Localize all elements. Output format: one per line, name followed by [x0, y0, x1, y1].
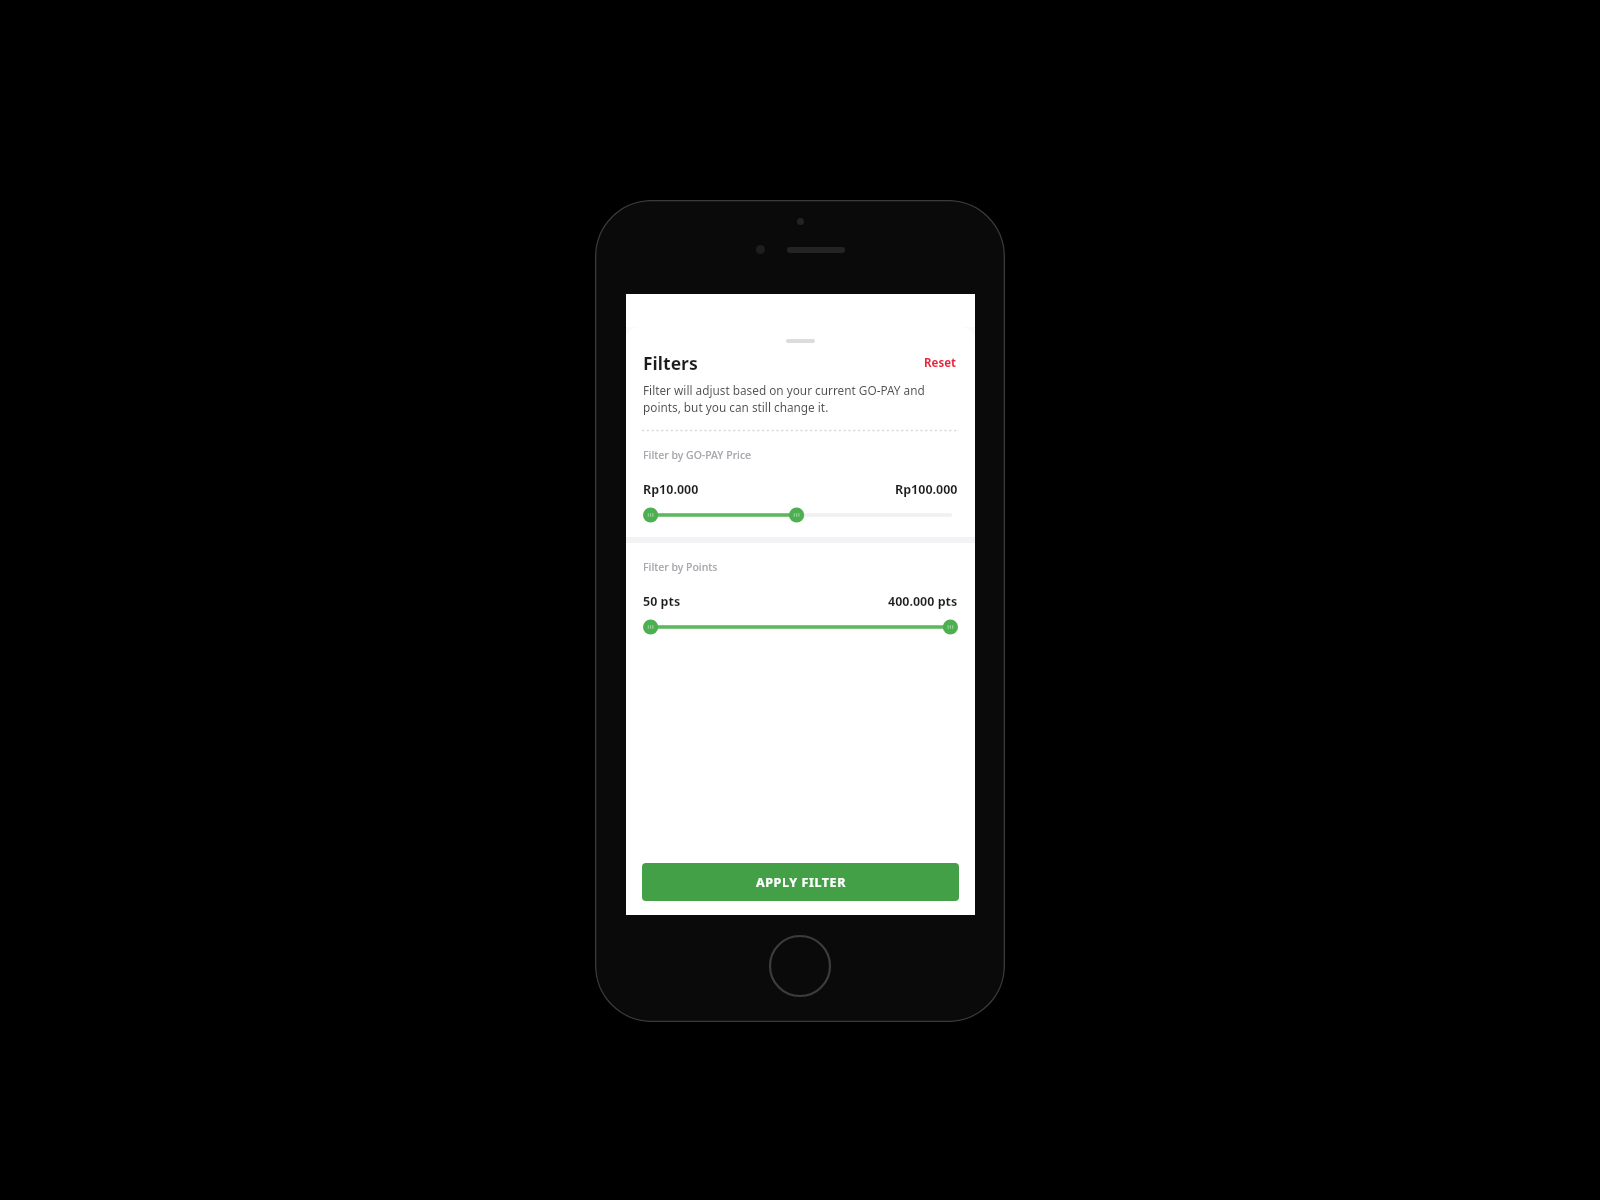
staticText: Filter by GO-PAY Price — [643, 448, 752, 462]
button[interactable]: APPLY FILTER — [642, 863, 959, 901]
staticText: Filter will adjust based on your current… — [643, 382, 955, 415]
staticText: Filter by Points — [643, 560, 718, 574]
staticText: APPLY FILTER — [756, 874, 846, 891]
staticText: Rp10.000 — [643, 481, 699, 498]
staticText: 50 pts — [643, 593, 681, 610]
button[interactable]: Range slider — [643, 618, 958, 636]
staticText: Filters — [643, 351, 698, 375]
button[interactable]: Range slider — [643, 506, 958, 524]
staticText: Rp100.000 — [895, 481, 958, 498]
staticText: Reset — [924, 355, 957, 371]
button[interactable]: Reset — [922, 351, 959, 375]
staticText: 400.000 pts — [888, 593, 958, 610]
